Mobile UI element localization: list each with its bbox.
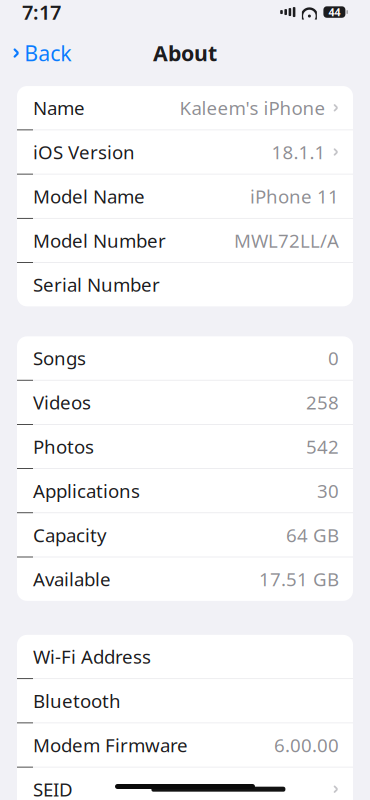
staticText: 7:17: [22, 0, 61, 25]
button[interactable]: Bluetooth: [17, 679, 353, 723]
staticText: Applications: [33, 478, 140, 503]
button[interactable]: Songs: [17, 336, 353, 381]
staticText: Bluetooth: [33, 688, 121, 713]
staticText: 0: [328, 346, 339, 370]
button[interactable]: iOS Version: [17, 130, 353, 174]
staticText: 258: [306, 390, 339, 415]
staticText: Name: [33, 95, 85, 120]
button[interactable]: Model Name: [17, 174, 353, 219]
button[interactable]: Back: [4, 33, 79, 73]
staticText: Back: [24, 39, 71, 67]
button[interactable]: SEID: [17, 767, 353, 800]
staticText: Songs: [33, 346, 86, 370]
staticText: Model Name: [33, 184, 145, 209]
staticText: 44: [328, 5, 340, 19]
staticText: MWL72LL/A: [234, 228, 339, 253]
button[interactable]: Available: [17, 557, 353, 601]
button[interactable]: Serial Number: [17, 263, 353, 306]
staticText: 30: [317, 478, 339, 503]
button[interactable]: Applications: [17, 469, 353, 513]
staticText: iOS Version: [33, 140, 135, 164]
staticText: 6.00.00: [274, 733, 339, 757]
staticText: Serial Number: [33, 272, 160, 297]
staticText: 64 GB: [286, 522, 339, 547]
staticText: Videos: [33, 390, 91, 415]
button[interactable]: Model Number: [17, 219, 353, 263]
button[interactable]: Wi-Fi Address: [17, 635, 353, 679]
staticText: iPhone 11: [250, 184, 339, 209]
staticText: 542: [306, 434, 339, 459]
staticText: Modem Firmware: [33, 733, 188, 757]
staticText: 17.51 GB: [259, 567, 339, 591]
button[interactable]: Name: [17, 86, 353, 130]
button[interactable]: Photos: [17, 425, 353, 469]
staticText: Capacity: [33, 522, 107, 547]
staticText: Wi-Fi Address: [33, 644, 151, 669]
staticText: About: [153, 39, 217, 67]
button[interactable]: Capacity: [17, 513, 353, 557]
button[interactable]: Videos: [17, 381, 353, 425]
staticText: Available: [33, 567, 111, 591]
staticText: SEID: [33, 777, 73, 800]
button[interactable]: Modem Firmware: [17, 723, 353, 767]
staticText: Kaleem's iPhone: [179, 95, 325, 120]
staticText: Model Number: [33, 228, 166, 253]
staticText: 18.1.1: [271, 140, 325, 164]
staticText: Photos: [33, 434, 94, 459]
